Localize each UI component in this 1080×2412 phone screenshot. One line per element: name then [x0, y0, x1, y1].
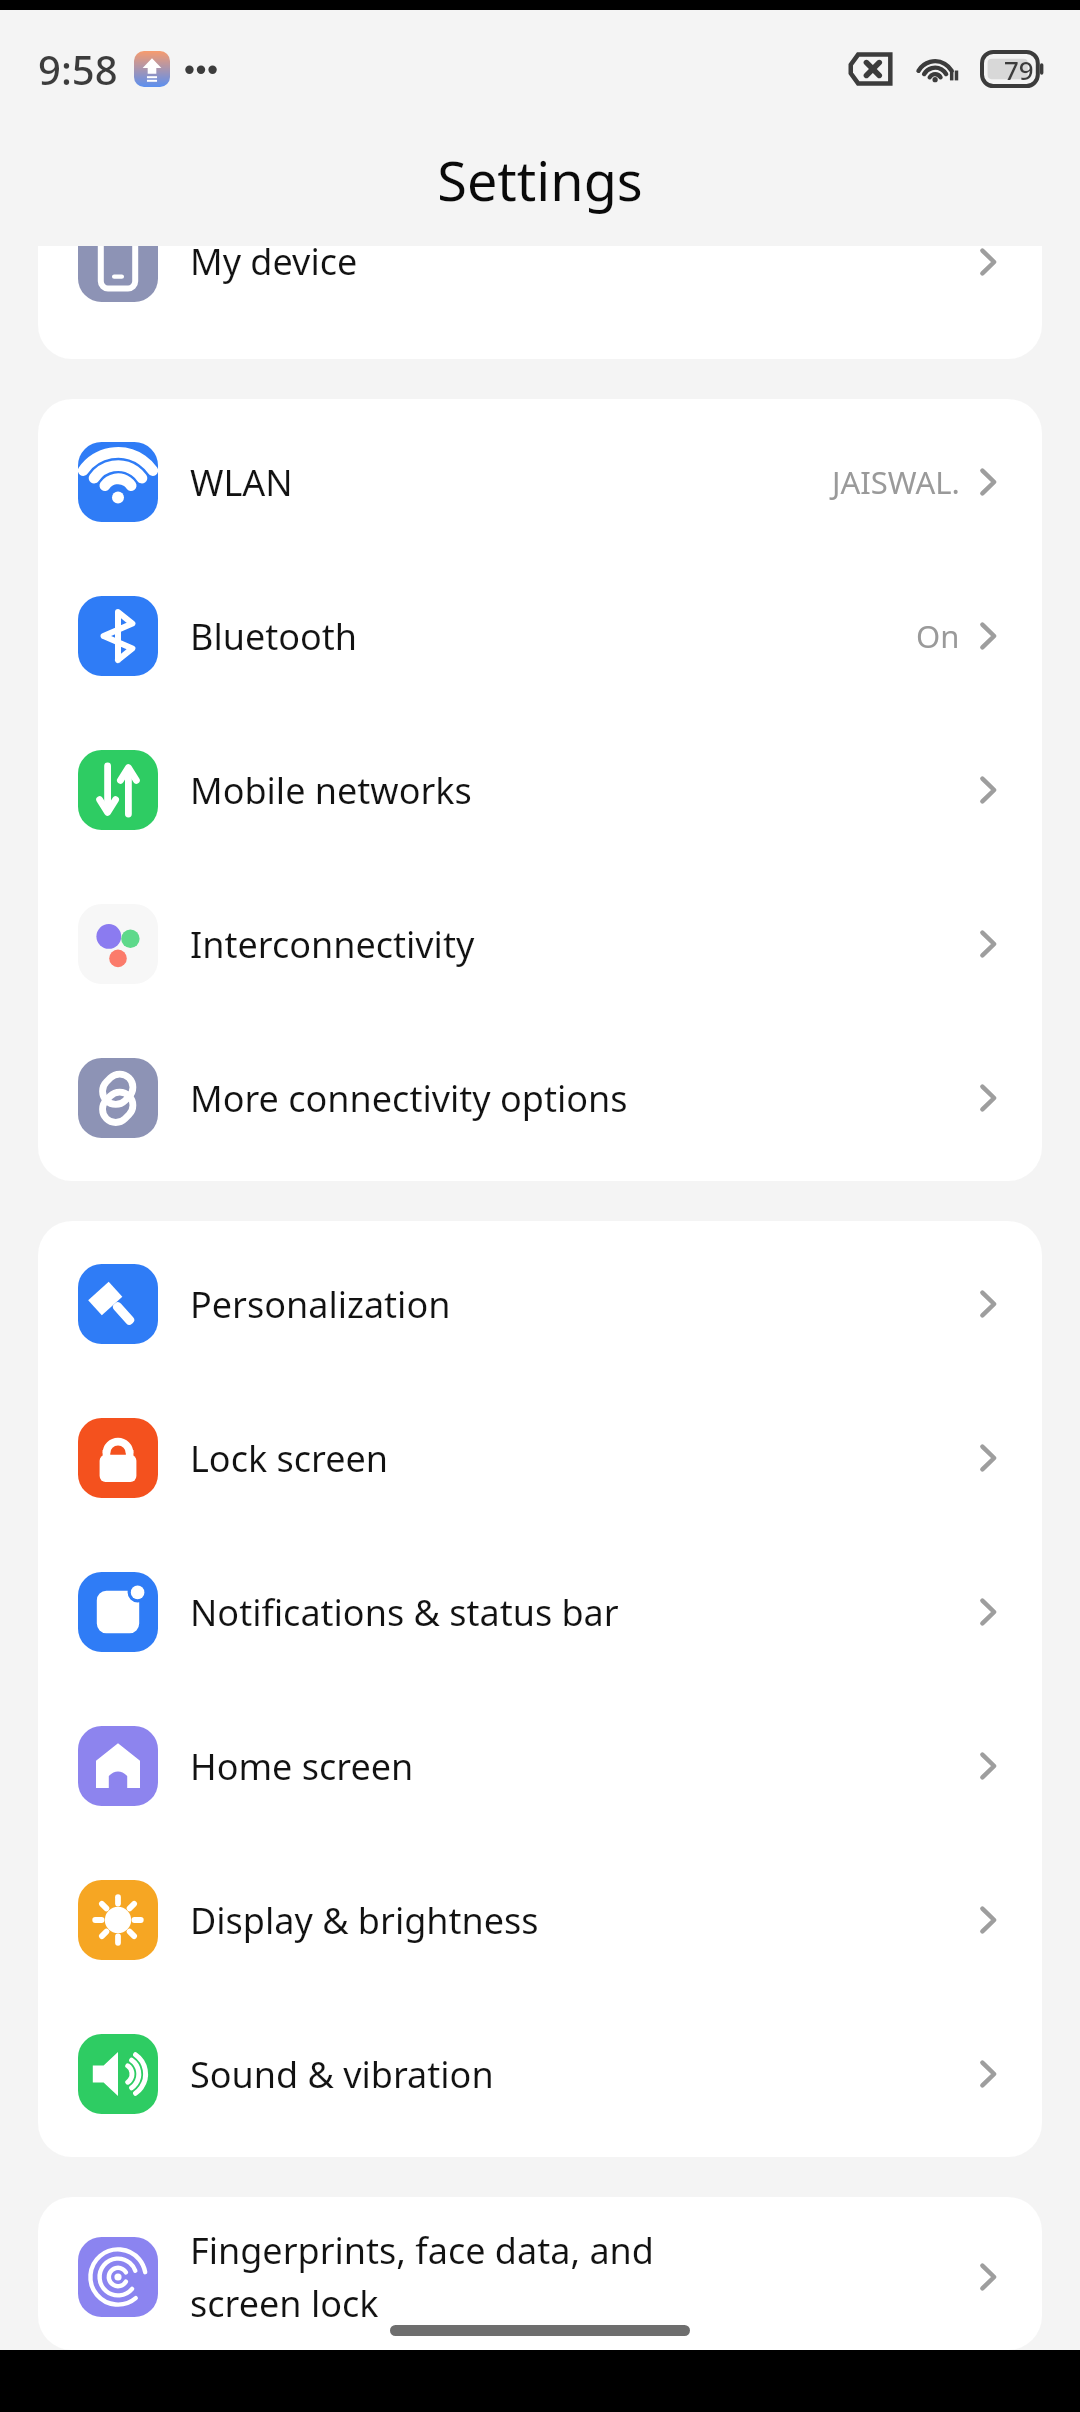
- button[interactable]: Interconnectivity: [38, 867, 1042, 1021]
- button[interactable]: More connectivity options: [38, 1021, 1042, 1175]
- staticText: Notifications & status bar: [190, 1588, 974, 1637]
- button[interactable]: Home screen: [38, 1689, 1042, 1843]
- button[interactable]: Fingerprints, face data, and screen lock: [38, 2203, 1042, 2350]
- button[interactable]: My device: [38, 246, 1042, 318]
- staticText: Personalization: [190, 1280, 974, 1329]
- staticText: Settings: [437, 143, 643, 217]
- button[interactable]: Notifications & status bar: [38, 1535, 1042, 1689]
- staticText: Mobile networks: [190, 766, 974, 815]
- button[interactable]: Sound & vibration: [38, 1997, 1042, 2151]
- button[interactable]: Display & brightness: [38, 1843, 1042, 1997]
- staticText: Display & brightness: [190, 1896, 974, 1945]
- staticText: Lock screen: [190, 1434, 974, 1483]
- button[interactable]: Bluetooth: [38, 559, 1042, 713]
- staticText: Fingerprints, face data, and screen lock: [190, 2226, 974, 2327]
- staticText: Home screen: [190, 1742, 974, 1791]
- staticText: WLAN: [190, 458, 832, 507]
- staticText: 9:58: [38, 42, 118, 96]
- staticText: My device: [190, 246, 974, 286]
- staticText: 79: [1004, 52, 1034, 87]
- button[interactable]: WLAN: [38, 405, 1042, 559]
- staticText: Interconnectivity: [190, 920, 974, 969]
- staticText: More connectivity options: [190, 1074, 974, 1123]
- button[interactable]: Personalization: [38, 1227, 1042, 1381]
- button[interactable]: Mobile networks: [38, 713, 1042, 867]
- staticText: Bluetooth: [190, 612, 916, 661]
- staticText: On: [916, 615, 960, 657]
- staticText: Sound & vibration: [190, 2050, 974, 2099]
- staticText: JAISWAL.: [832, 461, 960, 503]
- button[interactable]: Lock screen: [38, 1381, 1042, 1535]
